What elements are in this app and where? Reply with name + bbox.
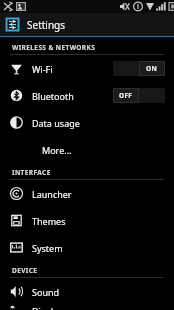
button[interactable]: Data usage bbox=[0, 109, 174, 136]
button[interactable]: Display bbox=[0, 305, 174, 310]
button[interactable]: Wi-Fi bbox=[0, 55, 174, 82]
staticText: INTERFACE bbox=[12, 168, 51, 177]
staticText: Data usage bbox=[32, 117, 174, 129]
button[interactable]: More... bbox=[0, 136, 174, 163]
button[interactable]: System bbox=[0, 234, 174, 261]
staticText: Wi-Fi bbox=[32, 63, 113, 75]
button[interactable]: Sound bbox=[0, 278, 174, 305]
staticText: ON bbox=[146, 64, 158, 73]
staticText: Themes bbox=[32, 215, 174, 227]
button[interactable]: Switch off bbox=[113, 88, 165, 103]
staticText: WIRELESS & NETWORKS bbox=[12, 43, 96, 52]
button[interactable]: Launcher bbox=[0, 180, 174, 207]
staticText: Sound bbox=[32, 286, 174, 298]
staticText: Launcher bbox=[32, 188, 174, 200]
staticText: Settings bbox=[27, 18, 66, 32]
staticText: Bluetooth bbox=[32, 90, 113, 102]
button[interactable]: Bluetooth bbox=[0, 82, 174, 109]
staticText: OFF bbox=[119, 91, 133, 100]
staticText: Display bbox=[32, 305, 174, 310]
staticText: DEVICE bbox=[12, 266, 38, 275]
button[interactable]: Themes bbox=[0, 207, 174, 234]
staticText: More... bbox=[42, 144, 174, 156]
staticText: System bbox=[32, 242, 174, 254]
button[interactable]: Switch on bbox=[113, 61, 165, 76]
